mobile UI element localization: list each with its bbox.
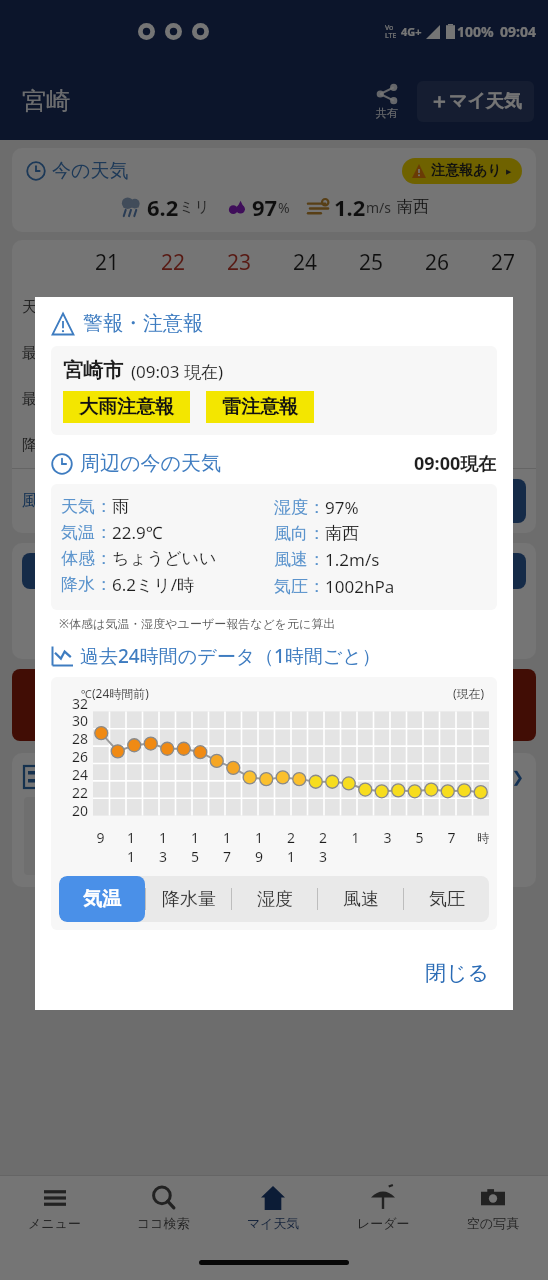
staticText: 97 — [252, 192, 278, 222]
staticText: NEW — [171, 851, 197, 866]
staticText: 湿度 — [257, 888, 293, 911]
staticText: (24時間前) — [92, 685, 149, 701]
staticText: ニュース一覧へ❯ — [405, 768, 524, 787]
staticText: マイ天気 — [449, 90, 522, 113]
button[interactable]: 気温 — [59, 876, 145, 922]
button[interactable]: 雷注意報 — [206, 391, 314, 423]
staticText: 7 — [447, 828, 456, 847]
button[interactable]: レーダー — [328, 1176, 438, 1244]
button[interactable]: 大雨注意報 — [63, 391, 190, 423]
staticText: 26 — [425, 248, 450, 277]
staticText: 気温： — [61, 522, 112, 543]
staticText: 風速 — [343, 888, 379, 911]
staticText: 9 — [96, 828, 105, 847]
button[interactable]: 共有 — [369, 76, 405, 126]
staticText: 空の写真 — [467, 1215, 520, 1231]
button[interactable]: 風速 — [317, 876, 403, 922]
staticText: 警報・注意報 — [83, 311, 203, 336]
button[interactable]: 今の天気 — [12, 148, 536, 232]
staticText: 降水量 — [162, 888, 216, 911]
button[interactable]: メニュー — [0, 1176, 109, 1244]
staticText: ちょうどいい — [112, 548, 217, 569]
staticText: 宮崎 — [22, 86, 70, 116]
staticText: メニュー — [28, 1215, 81, 1231]
staticText: 19 — [251, 828, 267, 866]
staticText: 共有 — [376, 106, 398, 120]
staticText: ミリ — [179, 198, 210, 217]
other: メニュー — [42, 1185, 68, 1211]
staticText: 11 — [123, 828, 139, 866]
staticText: 4G+ — [401, 24, 422, 39]
staticText: ▸ — [506, 165, 512, 178]
staticText: 21 — [283, 828, 299, 866]
staticText: 30 — [72, 711, 89, 729]
staticText: 湿度： — [274, 497, 325, 518]
staticText: 体感： — [61, 548, 112, 569]
staticText: 閉じる — [425, 960, 489, 986]
staticText: 26 — [72, 747, 89, 765]
staticText: 風 — [22, 491, 38, 511]
staticText: 20 — [72, 801, 89, 819]
staticText: 22 — [161, 248, 186, 277]
staticText: 13 — [155, 828, 171, 866]
other: ココ検索 — [151, 1185, 177, 1211]
staticText: レーダー — [357, 1215, 410, 1231]
staticText: 過去24時間のデータ（1時間ごと） — [80, 643, 381, 669]
staticText: ※体感は気温・湿度やユーザー報告などを元に算出 — [59, 615, 336, 631]
staticText: 降水 — [22, 436, 74, 455]
staticText: 5 — [415, 828, 424, 847]
button[interactable]: 気圧 — [403, 876, 489, 922]
button[interactable]: ココ検索 — [109, 1176, 218, 1244]
staticText: 22.9℃ — [112, 521, 163, 544]
staticText: 気温 — [83, 887, 121, 911]
staticText: (09:03 現在) — [131, 360, 224, 383]
staticText: ココ検索 — [137, 1215, 190, 1231]
staticText: 15 — [187, 828, 203, 866]
staticText: 1 — [351, 828, 360, 847]
other: Share — [375, 82, 399, 106]
staticText: 最高 — [22, 344, 74, 363]
staticText: 24 — [72, 765, 89, 783]
staticText: % — [278, 198, 290, 217]
staticText: 気圧 — [429, 888, 465, 911]
staticText: 28 — [72, 729, 89, 747]
staticText: 09:00現在 — [414, 451, 497, 476]
staticText: 24 — [293, 248, 318, 277]
staticText: 25 — [359, 248, 384, 277]
staticText: (現在) — [453, 685, 485, 701]
staticText: ＋ — [429, 89, 449, 114]
staticText: 今の天気 — [52, 159, 129, 183]
staticText: 注意報あり — [431, 162, 502, 180]
staticText: 風向： — [274, 523, 325, 544]
staticText: 09:04 — [500, 22, 536, 41]
other: マイ天気 — [260, 1185, 286, 1211]
staticText: お天気ニュース — [53, 765, 188, 789]
staticText: 降水： — [61, 574, 112, 595]
staticText: ℃ — [81, 686, 92, 701]
staticText: 雨 — [112, 496, 129, 517]
staticText: 3 — [383, 828, 392, 847]
staticText: Vo LTE — [385, 23, 397, 40]
other: 空の写真 — [480, 1185, 506, 1211]
staticText: 32 — [72, 694, 89, 711]
staticText: 最低 — [22, 390, 74, 409]
staticText: 宮崎市 — [63, 358, 123, 383]
button[interactable]: 降水量 — [145, 876, 231, 922]
button[interactable]: 閉じる — [417, 954, 497, 992]
staticText: 100% — [457, 22, 494, 41]
button[interactable]: 空の写真 — [438, 1176, 548, 1244]
staticText: 南西 — [325, 523, 359, 544]
staticText: 南西 — [397, 197, 429, 217]
staticText: 23 — [227, 248, 252, 277]
staticText: m/s — [366, 198, 392, 217]
staticText: 97% — [325, 496, 359, 519]
button[interactable]: マイ天気 — [218, 1176, 328, 1244]
button[interactable]: 湿度 — [231, 876, 317, 922]
other: レーダー — [370, 1185, 396, 1211]
staticText: 22 — [72, 783, 89, 801]
staticText: 6.2ミリ/時 — [112, 573, 195, 596]
button[interactable]: 注意報あり — [402, 158, 522, 184]
staticText: 23 — [315, 828, 331, 866]
button[interactable]: お天気ニュース — [12, 753, 536, 887]
button[interactable]: ＋ — [417, 81, 534, 122]
